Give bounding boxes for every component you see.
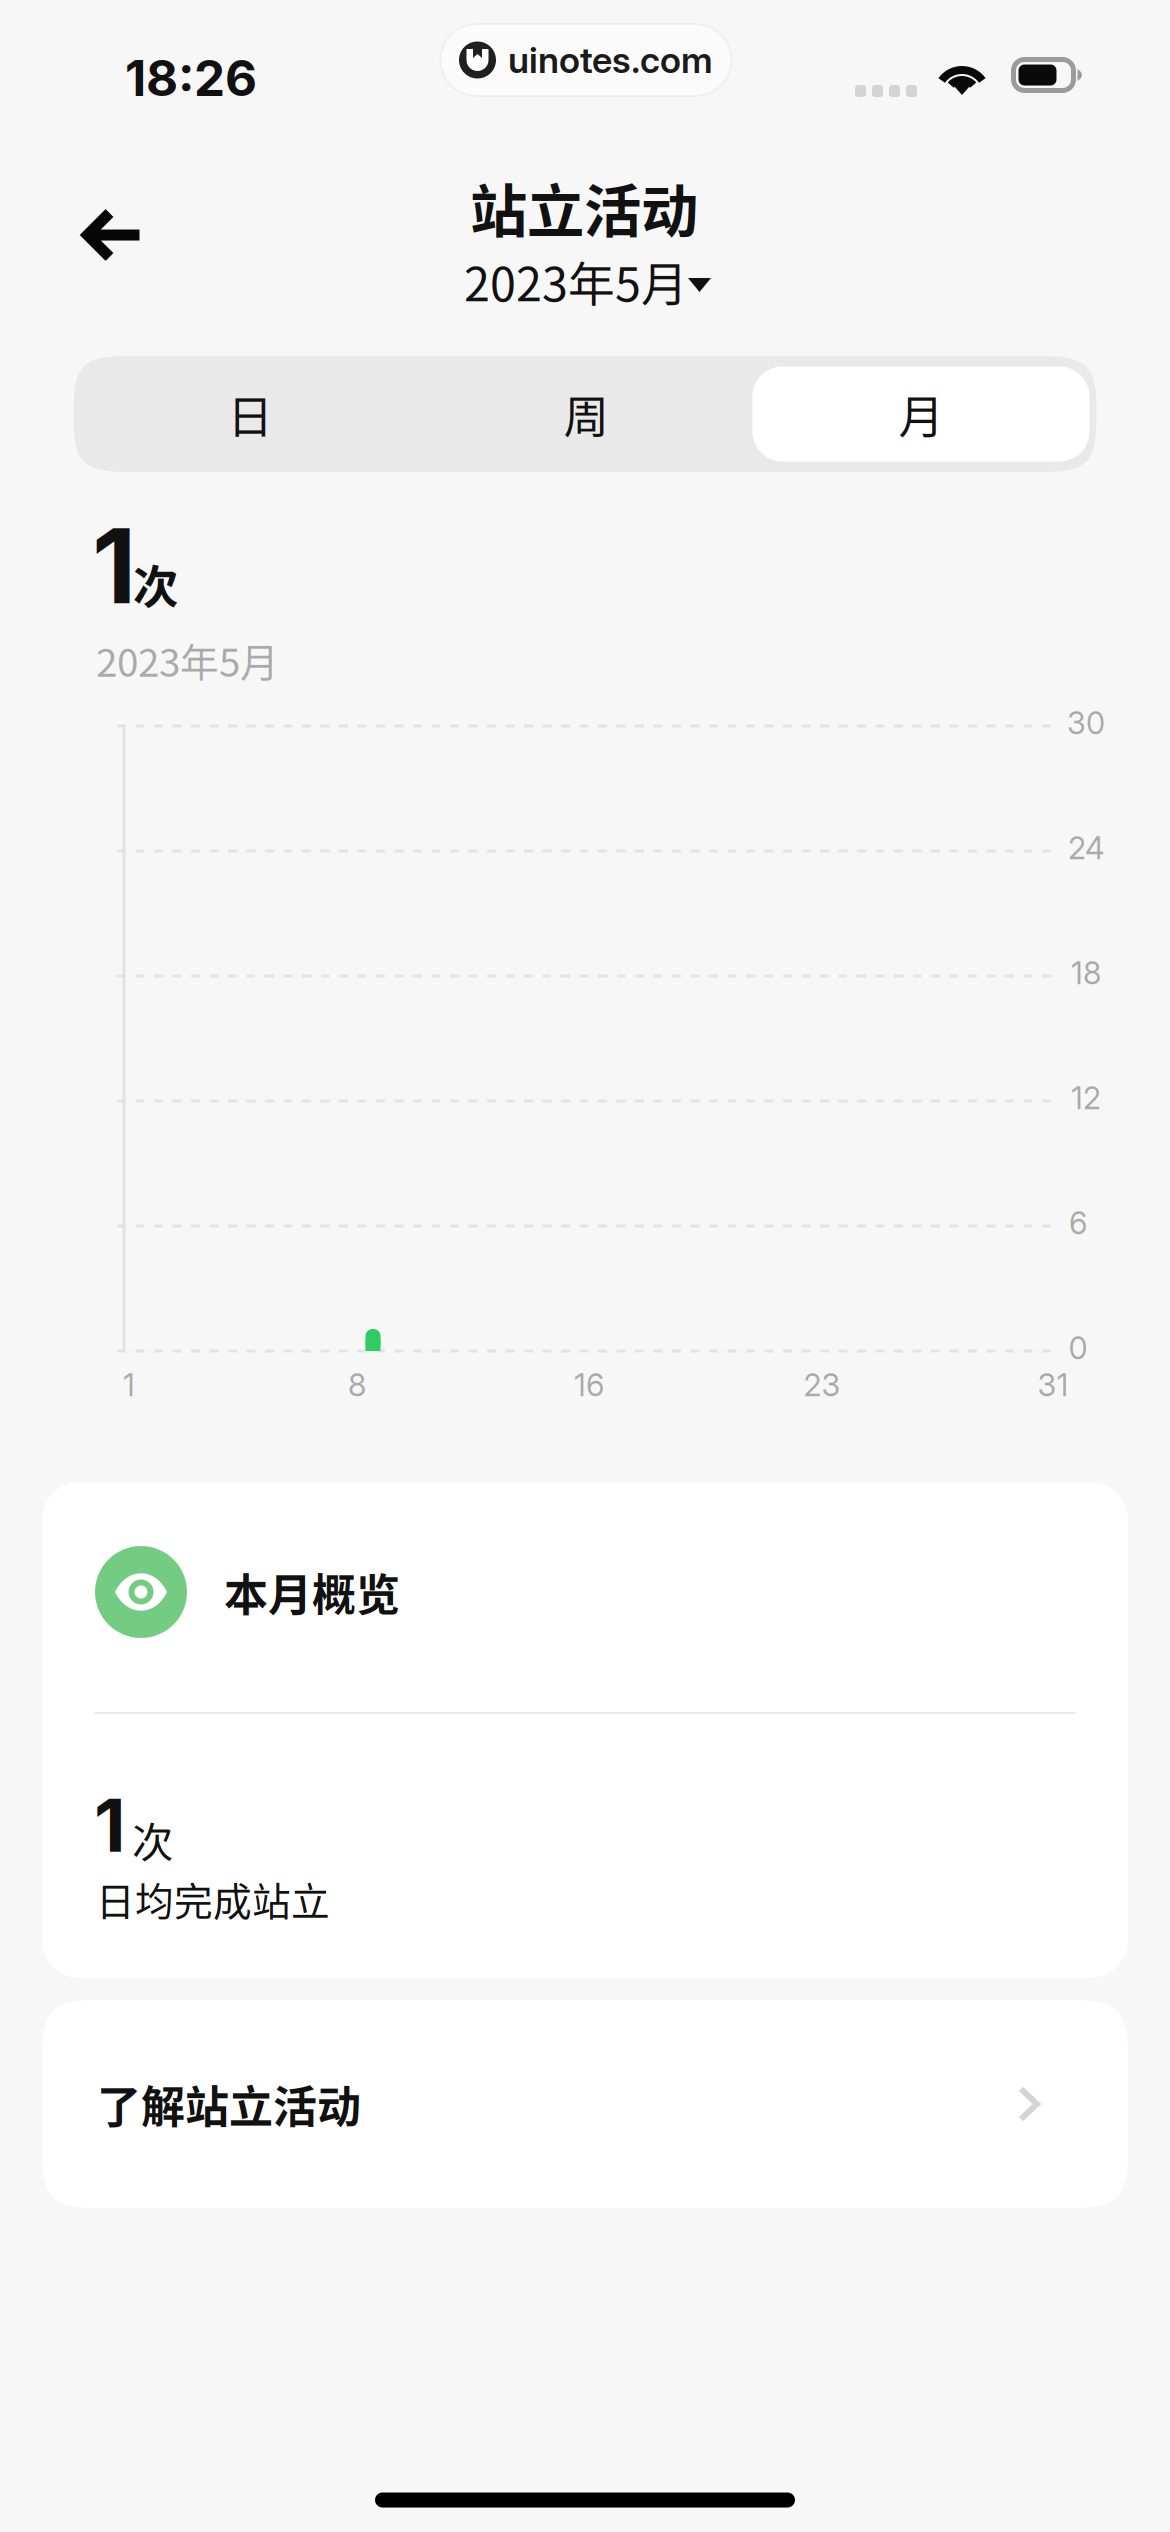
staticText: 次 [132,1809,173,1869]
staticText: 站立活动 [470,165,698,248]
staticText: 24 [1068,829,1104,866]
staticText: 2023年5月 [96,632,279,688]
staticText: 18:26 [125,48,257,108]
staticText: 31 [1037,1366,1068,1403]
staticText: 16 [574,1366,604,1403]
button[interactable]: 了解站立活动 [42,2000,1128,2208]
staticText: 12 [1071,1079,1101,1116]
staticText: 月 [898,381,943,447]
button[interactable]: 周 [426,356,745,472]
staticText: 30 [1067,704,1105,741]
staticText: 日 [227,381,272,447]
staticText: uinotes.com [508,38,713,82]
staticText: 18 [1071,954,1101,991]
button[interactable]: Back [45,173,178,297]
staticText: 了解站立活动 [97,2072,361,2136]
staticText: 6 [1069,1204,1087,1241]
button[interactable]: 2023年5月 [448,235,720,327]
button[interactable]: 月 [745,356,1096,472]
staticText: 8 [348,1366,366,1403]
staticText: 1 [94,1781,126,1869]
staticText: 23 [803,1366,840,1403]
button[interactable]: 日 [73,356,426,472]
staticText: 0 [1068,1329,1087,1366]
staticText: 1 [123,1366,135,1403]
staticText: 1 [92,504,136,628]
staticText: 周 [563,381,608,447]
staticText: 2023年5月 [464,247,688,315]
staticText: 日均完成站立 [96,1871,330,1927]
staticText: 次 [133,551,178,617]
staticText: 本月概览 [224,1560,400,1624]
